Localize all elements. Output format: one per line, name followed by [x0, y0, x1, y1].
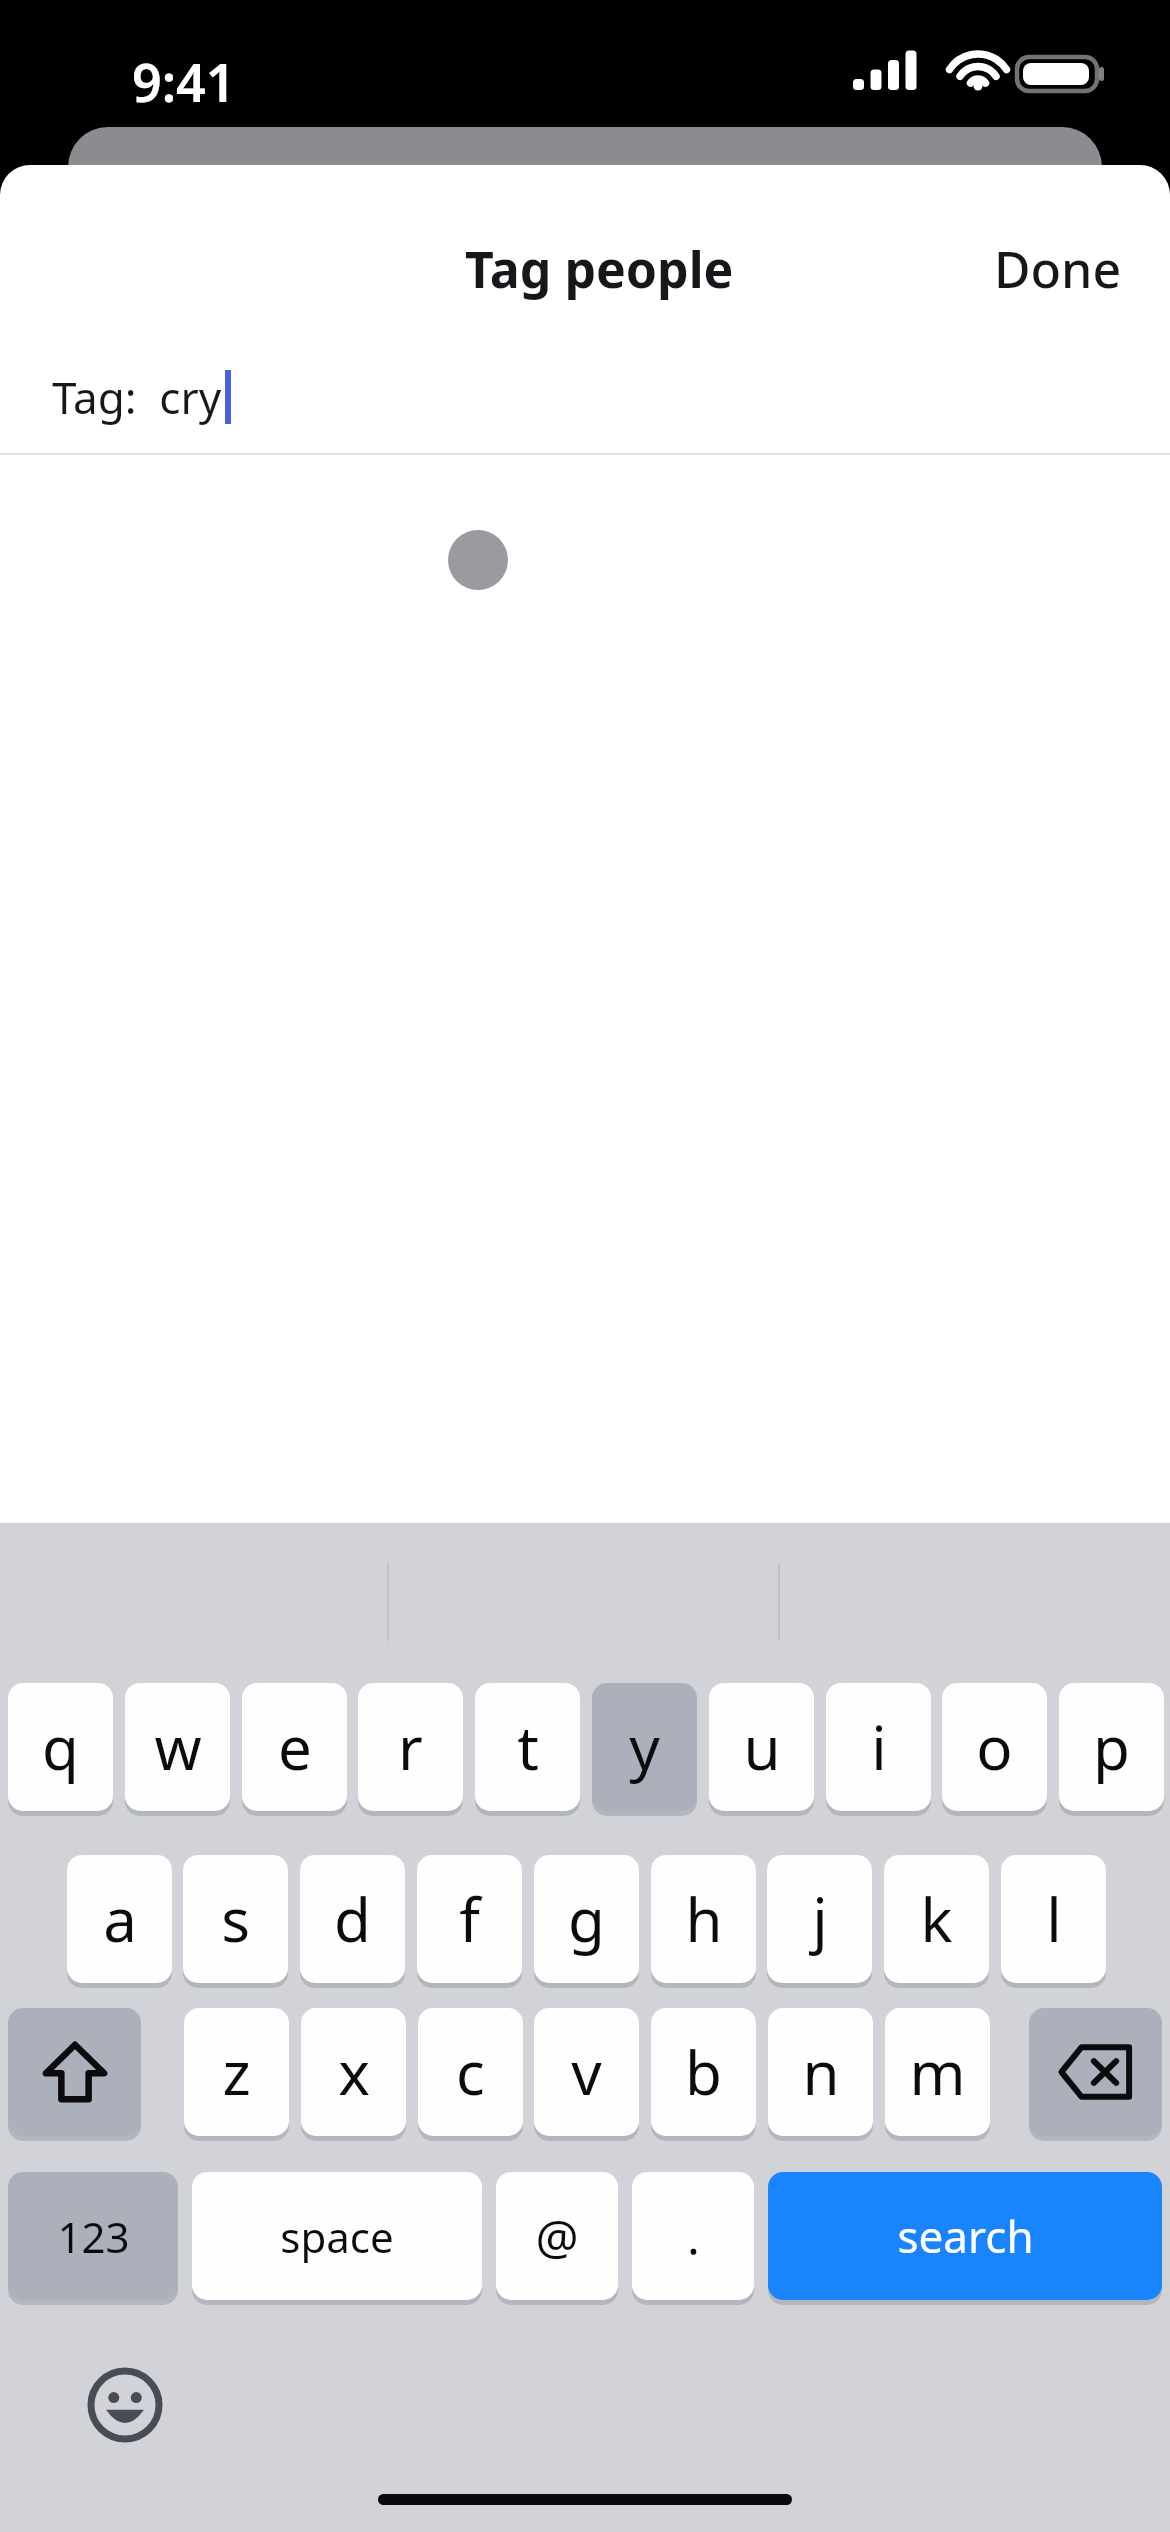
- button[interactable]: h: [651, 1855, 756, 1983]
- button[interactable]: z: [184, 2008, 289, 2136]
- button[interactable]: 123: [8, 2172, 178, 2300]
- button[interactable]: Person avatar: [448, 530, 508, 590]
- button[interactable]: .: [632, 2172, 754, 2300]
- button[interactable]: y: [592, 1683, 697, 1811]
- button[interactable]: a: [67, 1855, 172, 1983]
- staticText: Done: [994, 235, 1122, 303]
- button[interactable]: Shift: [8, 2008, 141, 2136]
- staticText: u: [743, 1706, 781, 1788]
- staticText: v: [571, 2031, 602, 2113]
- staticText: z: [222, 2031, 251, 2113]
- staticText: j: [812, 1878, 828, 1960]
- button[interactable]: w: [125, 1683, 230, 1811]
- staticText: y: [629, 1706, 660, 1788]
- staticText: f: [459, 1878, 480, 1960]
- button[interactable]: @: [496, 2172, 618, 2300]
- staticText: b: [685, 2031, 722, 2113]
- staticText: x: [338, 2031, 370, 2113]
- button[interactable]: o: [942, 1683, 1047, 1811]
- button[interactable]: l: [1001, 1855, 1106, 1983]
- button[interactable]: Tag people: [465, 235, 734, 303]
- button[interactable]: q: [8, 1683, 113, 1811]
- button[interactable]: e: [242, 1683, 347, 1811]
- button[interactable]: b: [651, 2008, 756, 2136]
- button[interactable]: j: [767, 1855, 872, 1983]
- staticText: a: [103, 1878, 137, 1960]
- staticText: e: [278, 1706, 312, 1788]
- staticText: n: [802, 2031, 840, 2113]
- staticText: Tag people: [465, 235, 734, 303]
- staticText: m: [909, 2031, 966, 2113]
- staticText: @: [535, 2204, 579, 2269]
- button[interactable]: c: [418, 2008, 523, 2136]
- button[interactable]: s: [183, 1855, 288, 1983]
- staticText: w: [154, 1706, 202, 1788]
- button[interactable]: x: [301, 2008, 406, 2136]
- staticText: g: [568, 1878, 605, 1960]
- staticText: d: [334, 1878, 371, 1960]
- staticText: .: [687, 2204, 700, 2269]
- staticText: space: [280, 2208, 394, 2265]
- button[interactable]: t: [475, 1683, 580, 1811]
- button[interactable]: v: [534, 2008, 639, 2136]
- button[interactable]: p: [1059, 1683, 1164, 1811]
- button[interactable]: Done: [994, 235, 1122, 303]
- button[interactable]: Emoji keyboard: [80, 2360, 170, 2450]
- button[interactable]: d: [300, 1855, 405, 1983]
- staticText: h: [685, 1878, 723, 1960]
- button[interactable]: space: [192, 2172, 482, 2300]
- staticText: r: [398, 1706, 423, 1788]
- staticText: t: [517, 1706, 539, 1788]
- staticText: o: [976, 1706, 1013, 1788]
- button[interactable]: n: [768, 2008, 873, 2136]
- staticText: p: [1093, 1706, 1130, 1788]
- staticText: search: [897, 2206, 1034, 2266]
- button[interactable]: k: [884, 1855, 989, 1983]
- staticText: i: [871, 1706, 887, 1788]
- staticText: k: [920, 1878, 953, 1960]
- button[interactable]: f: [417, 1855, 522, 1983]
- staticText: q: [42, 1706, 79, 1788]
- staticText: l: [1046, 1878, 1062, 1960]
- button[interactable]: Backspace: [1029, 2008, 1162, 2136]
- staticText: s: [221, 1878, 250, 1960]
- button[interactable]: g: [534, 1855, 639, 1983]
- staticText: 123: [57, 2208, 130, 2265]
- staticText: c: [456, 2031, 485, 2113]
- button[interactable]: m: [885, 2008, 990, 2136]
- button[interactable]: u: [709, 1683, 814, 1811]
- button[interactable]: Tag: cry: [52, 367, 231, 427]
- button[interactable]: i: [826, 1683, 931, 1811]
- button[interactable]: r: [358, 1683, 463, 1811]
- staticText: 9:41: [132, 46, 236, 117]
- button[interactable]: search: [768, 2172, 1162, 2300]
- staticText: Tag: cry: [52, 367, 222, 427]
